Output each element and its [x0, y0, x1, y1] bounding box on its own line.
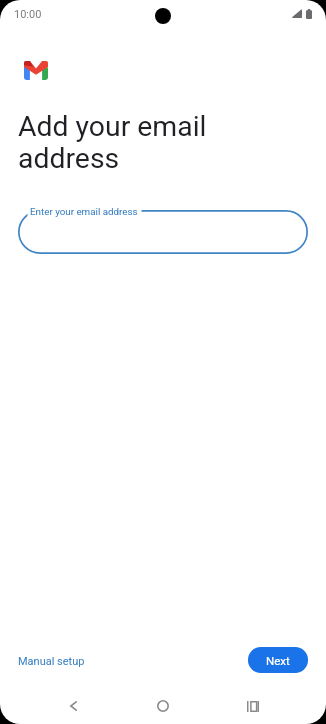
button[interactable]: Enter your email address: [18, 210, 308, 254]
button[interactable]: Manual setup: [11, 651, 92, 672]
staticText: 10:00: [14, 8, 42, 21]
button[interactable]: Next: [248, 647, 308, 673]
staticText: Manual setup: [18, 655, 85, 668]
staticText: Enter your email address: [30, 206, 138, 217]
staticText: Next: [266, 654, 290, 667]
staticText: Add your email address: [18, 110, 207, 174]
button[interactable]: Home: [142, 689, 184, 723]
button[interactable]: Back: [52, 689, 94, 723]
button[interactable]: Recent apps: [232, 689, 274, 723]
